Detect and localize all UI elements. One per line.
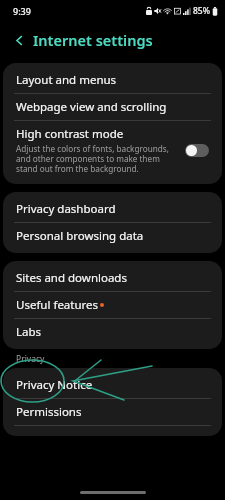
staticText: Useful features (16, 297, 99, 313)
staticText: High contrast mode (16, 126, 124, 142)
button[interactable]: Personal browsing data (3, 223, 222, 249)
staticText: Labs (16, 324, 42, 340)
staticText: Sites and downloads (16, 270, 127, 286)
staticText: Privacy (16, 353, 45, 365)
button[interactable]: Sites and downloads (3, 265, 222, 291)
staticText: 85% (193, 5, 210, 17)
staticText: Personal browsing data (16, 228, 144, 244)
staticText: Privacy Notice (16, 377, 93, 393)
staticText: Privacy dashboard (16, 201, 116, 217)
button[interactable]: Privacy Notice (3, 372, 222, 398)
button[interactable]: Useful features (3, 292, 222, 318)
button[interactable]: Back (8, 29, 30, 51)
staticText: Adjust the colors of fonts, backgrounds,… (16, 143, 179, 175)
button[interactable]: Webpage view and scrolling (3, 94, 222, 120)
button[interactable]: Labs (3, 319, 222, 345)
button[interactable]: High contrast mode (3, 121, 222, 180)
staticText: Permissions (16, 404, 82, 420)
button[interactable]: Privacy dashboard (3, 196, 222, 222)
button[interactable]: High contrast mode switch (185, 144, 209, 157)
staticText: Webpage view and scrolling (16, 99, 167, 115)
staticText: 9:39 (13, 5, 31, 17)
staticText: Layout and menus (16, 72, 117, 88)
staticText: Internet settings (33, 30, 153, 50)
button[interactable]: Layout and menus (3, 67, 222, 93)
button[interactable]: Permissions (3, 399, 222, 425)
